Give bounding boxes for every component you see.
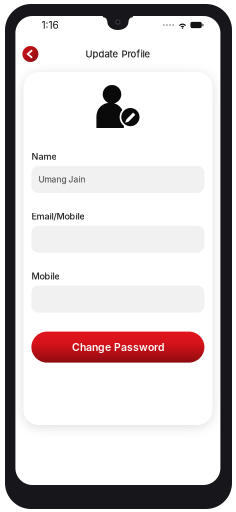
staticText: Mobile [31, 271, 59, 282]
staticText: Name [31, 151, 56, 162]
staticText: 1:16 [41, 19, 58, 31]
staticText: Email/Mobile [31, 211, 84, 222]
staticText: Update Profile [85, 48, 150, 60]
staticText: Umang Jain [38, 174, 85, 185]
button[interactable]: Back [19, 43, 41, 65]
button[interactable]: Change Password [31, 332, 204, 363]
staticText: Change Password [72, 341, 164, 353]
